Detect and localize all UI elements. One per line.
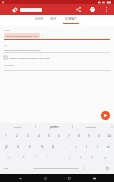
staticText: /	[84, 167, 86, 171]
staticText: ,	[17, 167, 18, 171]
button[interactable]: Home	[41, 174, 49, 182]
button[interactable]: Back	[16, 174, 24, 182]
button[interactable]: 2	[11, 130, 22, 141]
staticText: )	[97, 145, 98, 149]
staticText: pointer	[50, 125, 59, 128]
staticText: 8	[78, 134, 80, 138]
button[interactable]: More suggestions	[109, 123, 114, 130]
button[interactable]: 8	[74, 130, 84, 141]
button[interactable]: Space	[33, 164, 79, 173]
staticText: 7	[68, 134, 70, 138]
button[interactable]: &	[48, 141, 59, 152]
staticText: I want to receive a copy of this email	[9, 56, 50, 59]
staticText: contact@company.example.com	[4, 48, 41, 51]
button[interactable]: More options	[102, 5, 111, 14]
button[interactable]: Share	[74, 5, 83, 14]
button[interactable]: _	[22, 163, 32, 174]
staticText: (	[86, 145, 87, 149]
staticText: 3	[27, 134, 29, 138]
staticText: _	[26, 167, 28, 171]
button[interactable]: pointing	[73, 123, 109, 130]
staticText: x	[42, 34, 44, 37]
button[interactable]: =\<	[0, 152, 18, 163]
button[interactable]: )	[92, 141, 103, 152]
button[interactable]: ⌫	[104, 130, 114, 141]
staticText: 5	[48, 134, 50, 138]
button[interactable]: Switch to letters	[0, 163, 13, 174]
staticText: &	[52, 145, 55, 149]
staticText: +	[75, 145, 77, 149]
staticText: .	[95, 167, 96, 171]
staticText: =\<	[7, 156, 11, 159]
button[interactable]: I want to receive a copy of this email	[4, 56, 50, 59]
staticText: 9	[88, 134, 90, 138]
staticText: points	[14, 125, 22, 128]
button[interactable]: !	[75, 152, 86, 163]
button[interactable]: Keyboard switcher	[90, 174, 98, 182]
staticText: '	[47, 156, 48, 160]
button[interactable]: ?	[86, 152, 97, 163]
button[interactable]: @	[0, 141, 12, 152]
staticText: CONTACT	[65, 17, 77, 21]
staticText: :	[58, 156, 59, 160]
button[interactable]: 0	[94, 130, 104, 141]
button[interactable]: Print	[88, 5, 97, 14]
staticText: ✉	[107, 145, 110, 148]
staticText: 6	[58, 134, 60, 138]
button[interactable]: 9	[84, 130, 94, 141]
staticText: 2	[16, 134, 18, 138]
button[interactable]: 1	[0, 130, 11, 141]
button[interactable]: *	[18, 152, 30, 163]
button[interactable]: Send	[101, 111, 110, 120]
staticText: ;	[69, 156, 70, 160]
staticText: Message	[4, 63, 14, 66]
button[interactable]: %	[36, 141, 48, 152]
button[interactable]: Emoji	[100, 163, 114, 174]
button[interactable]: ✉	[103, 141, 114, 152]
button[interactable]: 6	[54, 130, 64, 141]
button[interactable]: 3	[22, 130, 33, 141]
button[interactable]: 5	[44, 130, 54, 141]
button[interactable]: HELP	[49, 17, 58, 24]
button[interactable]: CONTACT	[62, 17, 80, 24]
staticText: -	[64, 145, 65, 149]
button[interactable]: ;	[64, 152, 75, 163]
staticText: To	[4, 43, 7, 46]
staticText: ⌫	[107, 134, 112, 137]
button[interactable]: 7	[64, 130, 74, 141]
button[interactable]: #	[12, 141, 24, 152]
staticText: pointing	[86, 125, 96, 128]
staticText: From	[4, 28, 10, 31]
staticText: 0	[98, 134, 100, 138]
button[interactable]: pointer	[36, 123, 72, 130]
staticText: !	[80, 156, 81, 160]
button[interactable]: points	[0, 123, 35, 130]
button[interactable]: 4	[33, 130, 44, 141]
button[interactable]: $	[24, 141, 36, 152]
staticText: ⏎	[104, 156, 107, 159]
staticText: ABC	[4, 167, 9, 170]
staticText: sender.name@example.com	[6, 34, 38, 37]
staticText: 4	[38, 134, 40, 138]
button[interactable]: "	[30, 152, 42, 163]
button[interactable]: LOGIN	[34, 17, 45, 24]
button[interactable]: +	[70, 141, 81, 152]
staticText: %	[41, 145, 44, 149]
staticText: @	[5, 145, 8, 149]
staticText: HELP	[50, 17, 57, 21]
button[interactable]: Recent apps	[65, 174, 73, 182]
button[interactable]: ⏎	[97, 152, 114, 163]
staticText: LOGIN	[35, 17, 44, 21]
button[interactable]: (	[81, 141, 92, 152]
button[interactable]: /	[80, 163, 90, 174]
staticText: *	[23, 156, 25, 160]
staticText: ?	[91, 156, 93, 160]
staticText: #	[17, 145, 19, 149]
staticText: $	[29, 145, 31, 149]
staticText: "	[35, 156, 37, 160]
